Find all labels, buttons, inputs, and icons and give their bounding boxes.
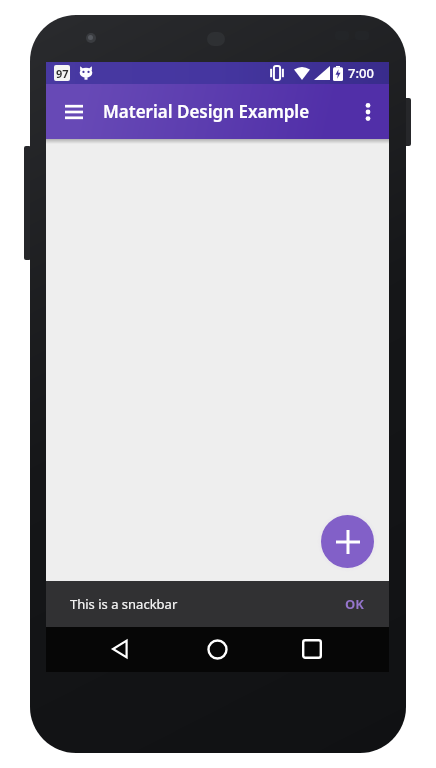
button[interactable] <box>347 84 389 139</box>
button[interactable] <box>101 629 141 669</box>
button[interactable] <box>321 515 374 568</box>
staticText: OK <box>345 595 364 613</box>
button[interactable] <box>197 629 237 669</box>
button[interactable] <box>46 84 101 139</box>
staticText: 97 <box>56 66 69 81</box>
staticText: 7:00 <box>348 64 374 82</box>
staticText: Material Design Example <box>103 100 310 123</box>
button[interactable] <box>292 629 332 669</box>
button[interactable]: OK <box>345 595 364 613</box>
staticText: This is a snackbar <box>70 595 178 613</box>
